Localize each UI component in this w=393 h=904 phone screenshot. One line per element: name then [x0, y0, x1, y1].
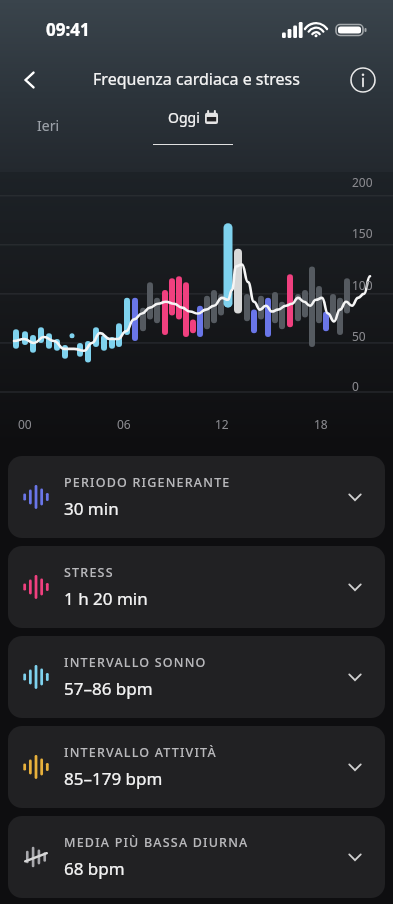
staticText: STRESS — [64, 564, 114, 581]
staticText: Ieri — [37, 116, 60, 135]
staticText: 06 — [117, 416, 131, 432]
button[interactable]: Oggi — [152, 104, 234, 148]
button[interactable]: MEDIA PIÙ BASSA DIURNA — [8, 816, 385, 898]
staticText: Oggi — [168, 108, 200, 127]
staticText: 0 — [352, 378, 359, 394]
staticText: 18 — [314, 416, 328, 432]
button[interactable]: INTERVALLO SONNO — [8, 636, 385, 718]
staticText: 09:41 — [46, 18, 90, 41]
button[interactable]: Espandi — [339, 481, 371, 513]
staticText: 50 — [352, 328, 366, 344]
button[interactable]: PERIODO RIGENERANTE — [8, 456, 385, 538]
button[interactable]: Indietro — [8, 58, 52, 102]
staticText: 200 — [352, 174, 373, 190]
staticText: INTERVALLO SONNO — [64, 654, 207, 671]
button[interactable]: Espandi — [339, 571, 371, 603]
staticText: Frequenza cardiaca e stress — [0, 68, 393, 90]
button[interactable]: Espandi — [339, 751, 371, 783]
staticText: 150 — [352, 225, 373, 241]
staticText: MEDIA PIÙ BASSA DIURNA — [64, 834, 249, 851]
button[interactable]: Espandi — [339, 661, 371, 693]
staticText: 57–86 bpm — [64, 677, 153, 700]
staticText: 12 — [215, 416, 229, 432]
staticText: 00 — [18, 416, 32, 432]
button[interactable]: Informazioni — [341, 58, 385, 102]
button[interactable]: STRESS — [8, 546, 385, 628]
staticText: 85–179 bpm — [64, 767, 163, 790]
staticText: PERIODO RIGENERANTE — [64, 474, 231, 491]
button[interactable]: Espandi — [339, 841, 371, 873]
staticText: INTERVALLO ATTIVITÀ — [64, 744, 217, 761]
button[interactable]: Ieri — [8, 108, 88, 142]
staticText: 68 bpm — [64, 857, 125, 880]
staticText: 30 min — [64, 497, 119, 520]
button[interactable]: INTERVALLO ATTIVITÀ — [8, 726, 385, 808]
staticText: 100 — [352, 277, 373, 293]
staticText: 1 h 20 min — [64, 587, 148, 610]
